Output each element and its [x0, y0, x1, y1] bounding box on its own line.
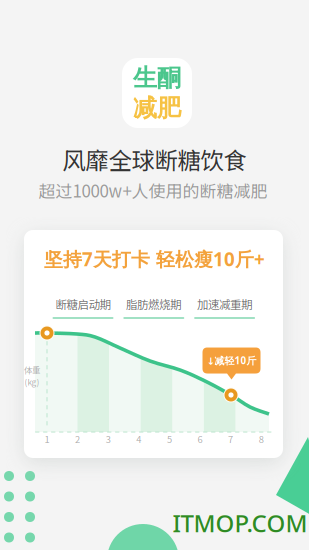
staticText: 8 [259, 432, 264, 446]
staticText: 坚持7天打卡 轻松瘦10斤+ [44, 246, 265, 272]
staticText: 减肥 [133, 93, 181, 123]
staticText: 加速减重期 [197, 296, 252, 312]
staticText: 风靡全球断糖饮食 [62, 142, 246, 176]
staticText: ↓减轻10斤 [206, 354, 256, 367]
staticText: 3 [106, 432, 111, 446]
staticText: 体重 [24, 364, 40, 376]
staticText: 1 [44, 432, 49, 446]
staticText: ITMOP.COM [172, 507, 307, 539]
staticText: 超过1000w+人使用的断糖减肥 [38, 178, 267, 202]
staticText: 4 [136, 432, 141, 446]
staticText: 7 [228, 432, 233, 446]
staticText: 脂肪燃烧期 [126, 296, 181, 312]
staticText: 断糖启动期 [55, 296, 110, 312]
staticText: 生酮 [133, 63, 181, 93]
staticText: 2 [75, 432, 80, 446]
staticText: 5 [167, 432, 172, 446]
staticText: (kg) [24, 376, 39, 388]
staticText: 6 [197, 432, 202, 446]
